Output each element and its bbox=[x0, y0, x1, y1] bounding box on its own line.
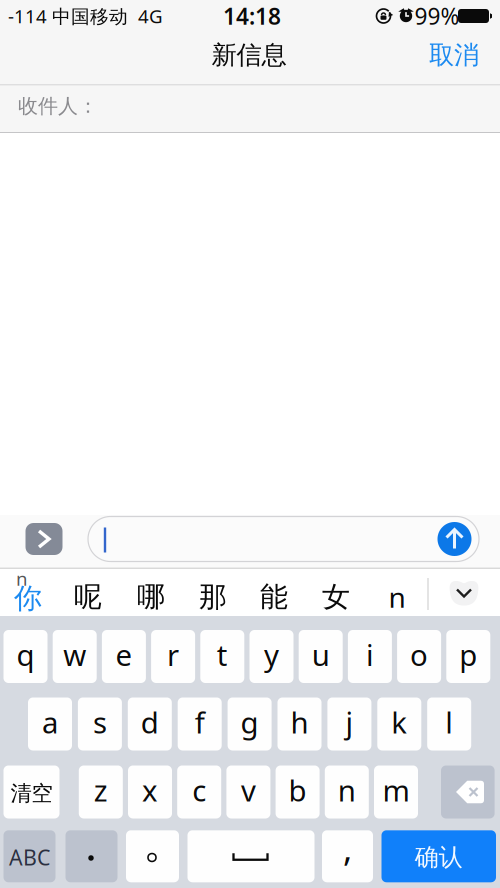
button[interactable]: ABC bbox=[3, 830, 55, 882]
button[interactable]: 能 bbox=[246, 577, 302, 617]
button[interactable]: e bbox=[102, 630, 146, 683]
staticText: 清空 bbox=[10, 780, 52, 807]
button[interactable]: s bbox=[78, 697, 122, 750]
button[interactable] bbox=[126, 830, 179, 882]
staticText: 收件人： bbox=[18, 94, 98, 118]
button[interactable]: 取消 bbox=[421, 33, 487, 77]
button[interactable]: 呢 bbox=[60, 577, 116, 617]
staticText: r bbox=[167, 635, 179, 674]
button[interactable]: l bbox=[427, 697, 471, 750]
staticText: m bbox=[382, 770, 409, 809]
staticText: h bbox=[290, 702, 308, 741]
staticText: u bbox=[312, 635, 330, 674]
button[interactable]: , bbox=[322, 830, 373, 882]
button[interactable]: a bbox=[28, 697, 72, 750]
staticText: q bbox=[16, 635, 34, 674]
staticText: n bbox=[338, 770, 356, 809]
staticText: l bbox=[445, 702, 453, 741]
button[interactable]: 确认 bbox=[381, 830, 496, 882]
staticText: 女 bbox=[322, 580, 350, 614]
staticText: 那 bbox=[199, 580, 227, 614]
staticText: s bbox=[93, 702, 107, 741]
button[interactable]: k bbox=[377, 697, 421, 750]
button[interactable]: h bbox=[277, 697, 321, 750]
button[interactable]: u bbox=[299, 630, 343, 683]
staticText: b bbox=[289, 770, 307, 809]
staticText: 新信息 bbox=[211, 39, 286, 70]
button[interactable]: r bbox=[151, 630, 195, 683]
staticText: v bbox=[241, 770, 256, 809]
staticText: j bbox=[345, 702, 353, 741]
button[interactable]: p bbox=[446, 630, 490, 683]
staticText: y bbox=[264, 635, 279, 674]
staticText: 4G bbox=[138, 4, 163, 28]
staticText: p bbox=[459, 635, 477, 674]
staticText: ABC bbox=[9, 843, 50, 871]
staticText: w bbox=[63, 635, 86, 674]
staticText: i bbox=[366, 635, 374, 674]
staticText: n bbox=[388, 578, 405, 616]
staticText: k bbox=[391, 702, 407, 741]
button[interactable] bbox=[441, 765, 495, 818]
staticText: 取消 bbox=[429, 39, 479, 70]
button[interactable]: b bbox=[276, 765, 320, 818]
button[interactable]: y bbox=[249, 630, 293, 683]
button[interactable]: Apps bbox=[25, 523, 62, 555]
staticText: n bbox=[16, 566, 28, 591]
button[interactable]: t bbox=[200, 630, 244, 683]
button[interactable]: v bbox=[226, 765, 270, 818]
staticText: t bbox=[217, 635, 228, 674]
button[interactable]: n bbox=[325, 765, 369, 818]
button[interactable]: 女 bbox=[308, 577, 364, 617]
button[interactable]: q bbox=[3, 630, 47, 683]
staticText: e bbox=[115, 635, 132, 674]
staticText: x bbox=[142, 770, 158, 809]
button[interactable]: Send bbox=[437, 522, 471, 556]
button[interactable]: Hide keyboard bbox=[436, 568, 492, 616]
staticText: 99% bbox=[414, 1, 459, 31]
staticText: -114 中国移动 bbox=[8, 4, 128, 28]
button[interactable]: 清空 bbox=[3, 765, 59, 818]
button[interactable]: m bbox=[374, 765, 418, 818]
button[interactable]: i bbox=[348, 630, 392, 683]
button[interactable]: w bbox=[53, 630, 97, 683]
button[interactable] bbox=[187, 830, 314, 882]
staticText: 哪 bbox=[137, 580, 165, 614]
staticText: 14:18 bbox=[223, 1, 281, 31]
button[interactable]: 哪 bbox=[123, 577, 179, 617]
staticText: 你 bbox=[14, 581, 42, 616]
staticText: d bbox=[141, 702, 159, 741]
staticText: , bbox=[343, 825, 352, 871]
button[interactable] bbox=[65, 830, 117, 882]
button[interactable]: c bbox=[177, 765, 221, 818]
staticText: g bbox=[241, 702, 259, 741]
button[interactable]: o bbox=[397, 630, 441, 683]
staticText: 确认 bbox=[415, 843, 463, 872]
staticText: 呢 bbox=[74, 580, 102, 614]
button[interactable]: n bbox=[369, 577, 425, 617]
button[interactable]: 那 bbox=[185, 577, 241, 617]
button[interactable]: d bbox=[128, 697, 172, 750]
button[interactable]: f bbox=[178, 697, 222, 750]
button[interactable]: 你 bbox=[1, 580, 55, 616]
staticText: z bbox=[94, 770, 108, 809]
button[interactable]: x bbox=[128, 765, 172, 818]
staticText: 能 bbox=[260, 580, 288, 614]
staticText: f bbox=[195, 702, 205, 741]
button[interactable]: g bbox=[228, 697, 272, 750]
staticText: c bbox=[192, 770, 206, 809]
button[interactable]: j bbox=[327, 697, 371, 750]
button[interactable]: z bbox=[79, 765, 123, 818]
staticText: o bbox=[410, 635, 428, 674]
staticText: a bbox=[42, 702, 58, 741]
